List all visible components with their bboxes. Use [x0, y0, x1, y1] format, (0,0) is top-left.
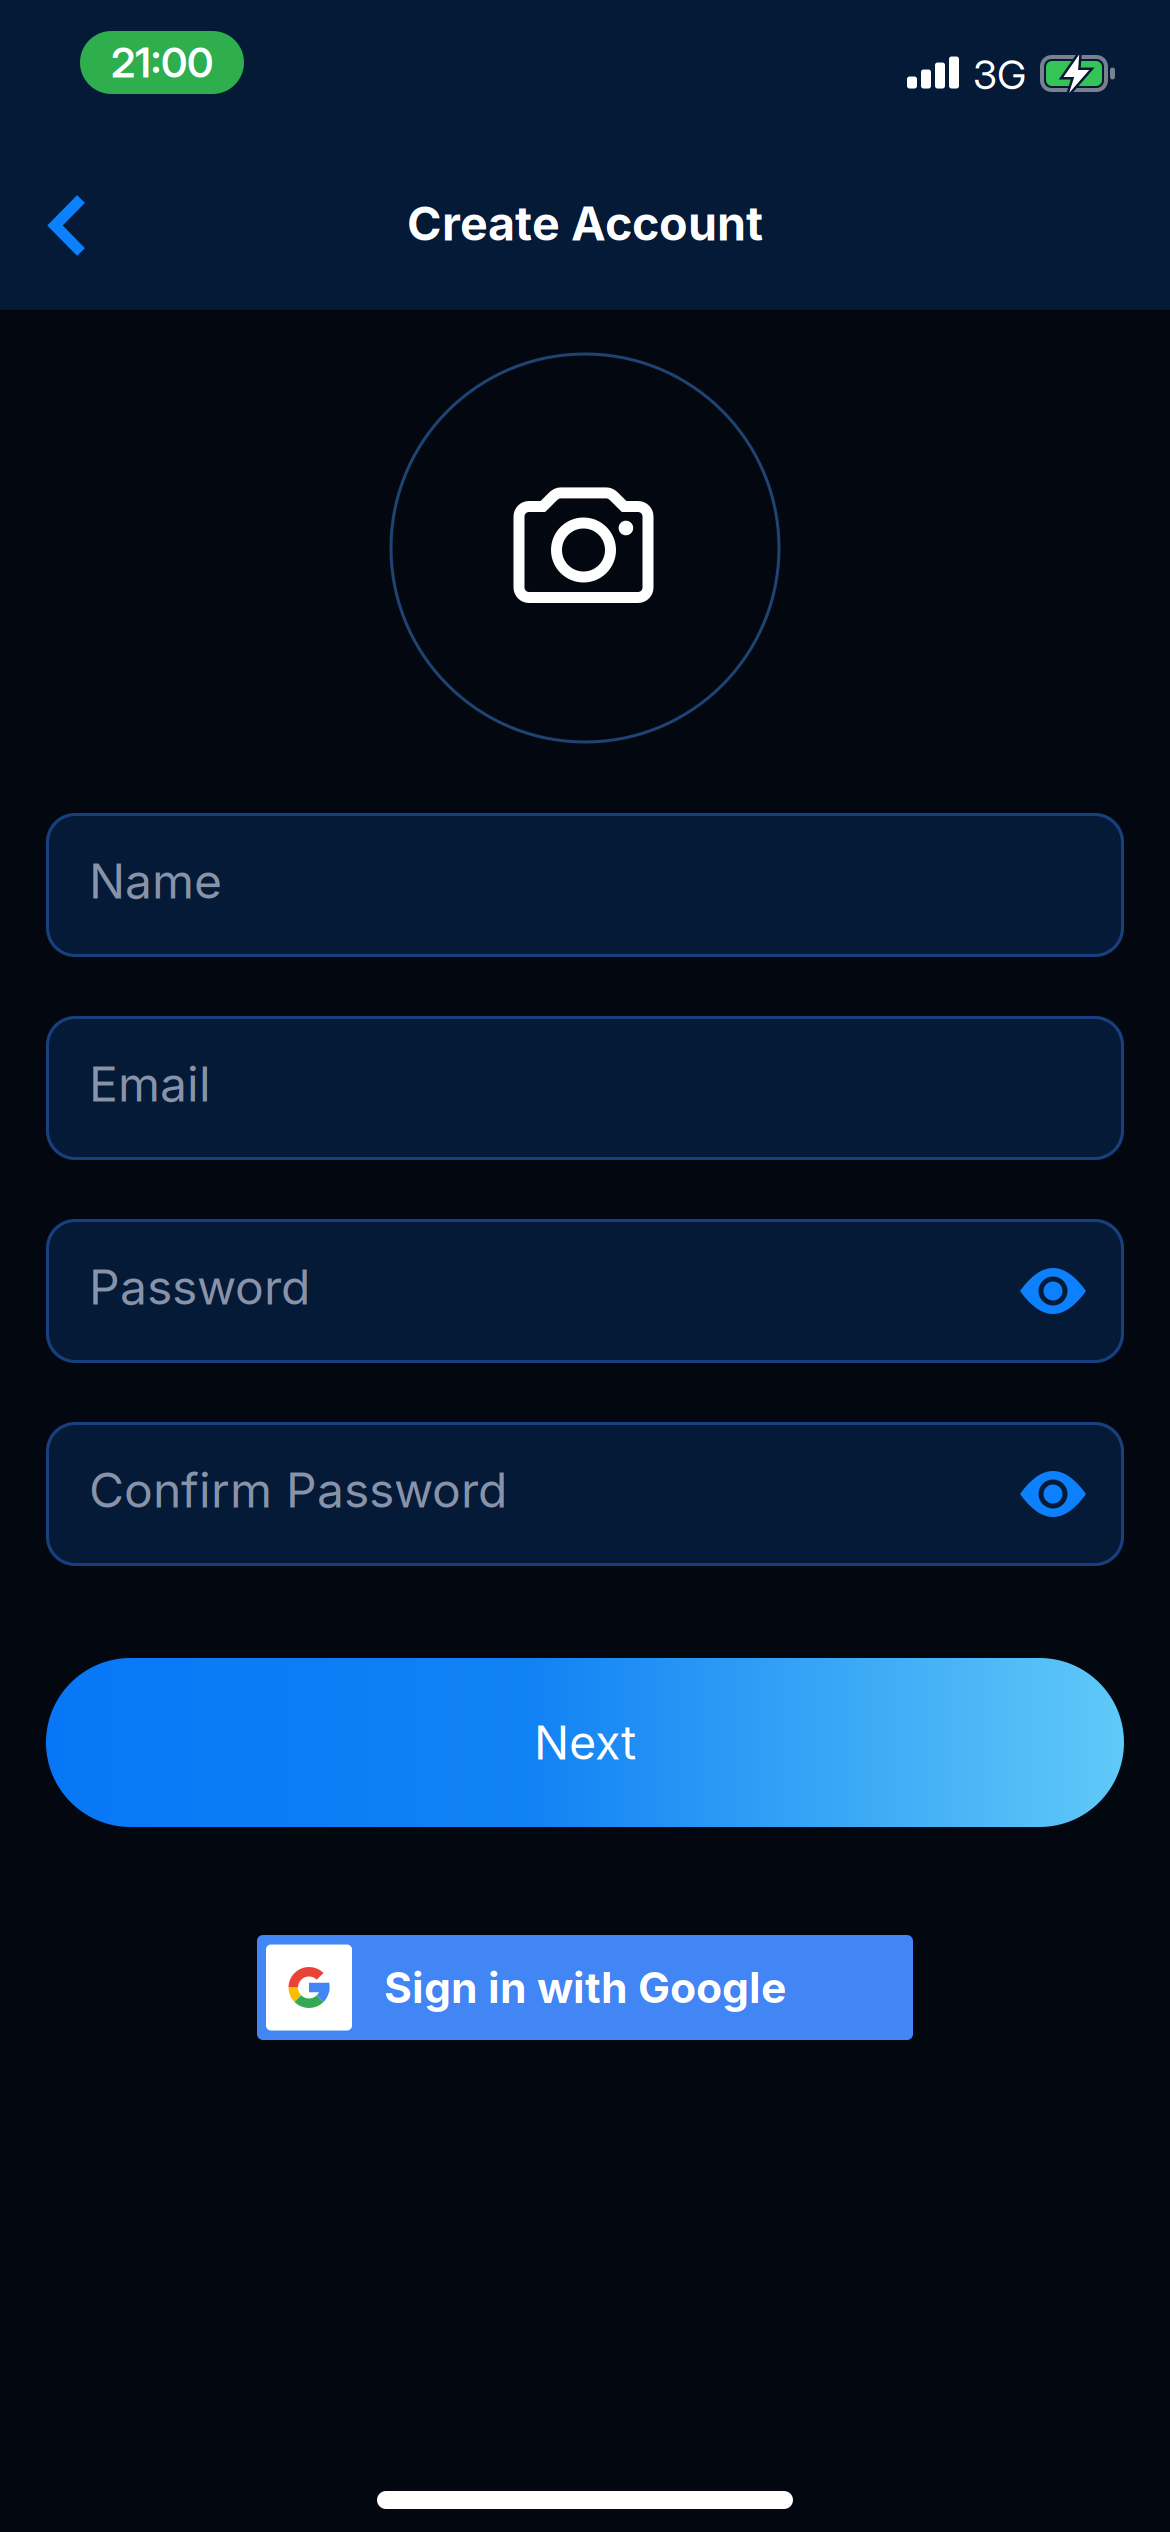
staticText: 3G	[973, 51, 1026, 98]
button[interactable]: Name	[46, 813, 1124, 957]
staticText: Password	[89, 1259, 310, 1315]
button[interactable]: Show password	[1020, 1268, 1086, 1314]
button[interactable]: Back	[51, 196, 87, 255]
staticText: Confirm Password	[89, 1462, 507, 1518]
staticText: Create Account	[407, 196, 763, 251]
button[interactable]: Confirm Password	[46, 1422, 1124, 1566]
staticText: Name	[89, 853, 222, 909]
staticText: Next	[534, 1715, 636, 1770]
staticText: Sign in with Google	[384, 1962, 786, 2013]
button[interactable]: Sign in with Google	[257, 1935, 913, 2040]
button[interactable]: Show password	[1020, 1471, 1086, 1517]
button[interactable]: Add profile photo	[391, 354, 779, 742]
staticText: Email	[89, 1056, 211, 1112]
button[interactable]: Email	[46, 1016, 1124, 1160]
button[interactable]: Password	[46, 1219, 1124, 1363]
staticText: 21:00	[111, 38, 213, 87]
button[interactable]: Next	[46, 1658, 1124, 1827]
